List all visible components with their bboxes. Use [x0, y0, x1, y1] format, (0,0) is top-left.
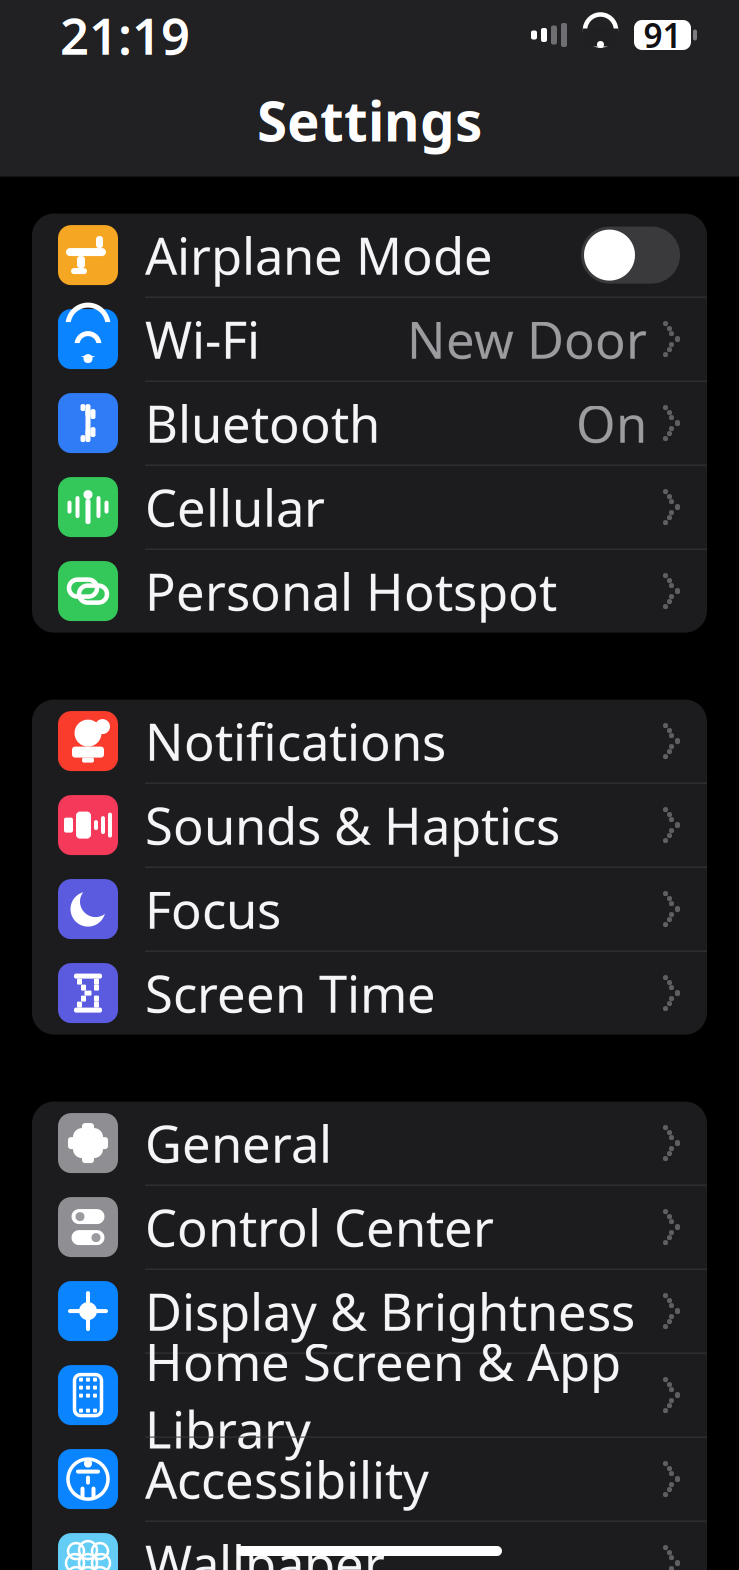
- staticText: Bluetooth: [145, 389, 380, 457]
- button[interactable]: Cellular: [32, 466, 707, 550]
- staticText: Wallpaper: [145, 1529, 385, 1570]
- button[interactable]: Notifications: [32, 700, 707, 784]
- staticText: Accessibility: [145, 1445, 429, 1513]
- button[interactable]: General: [32, 1102, 707, 1186]
- staticText: Personal Hotspot: [145, 557, 557, 625]
- button[interactable]: Personal Hotspot: [32, 550, 707, 633]
- button[interactable]: Sounds & Haptics: [32, 784, 707, 868]
- staticText: Settings: [257, 84, 482, 157]
- staticText: Control Center: [145, 1193, 494, 1261]
- button[interactable]: Bluetooth: [32, 382, 707, 466]
- staticText: Wi-Fi: [145, 305, 260, 373]
- staticText: On: [576, 389, 647, 457]
- button[interactable]: Control Center: [32, 1186, 707, 1270]
- staticText: Focus: [145, 875, 281, 943]
- button[interactable]: Wallpaper: [32, 1522, 707, 1570]
- staticText: Display & Brightness: [145, 1277, 635, 1345]
- button[interactable]: Airplane Mode: [32, 214, 707, 298]
- button[interactable]: Home Screen & App Library: [32, 1354, 707, 1438]
- staticText: Notifications: [145, 707, 446, 775]
- button[interactable]: Focus: [32, 868, 707, 952]
- staticText: Screen Time: [145, 959, 436, 1027]
- staticText: 21:19: [60, 1, 190, 69]
- staticText: General: [145, 1109, 332, 1177]
- button[interactable]: Display & Brightness: [32, 1270, 707, 1354]
- button[interactable]: Accessibility: [32, 1438, 707, 1522]
- staticText: New Door: [407, 305, 647, 373]
- staticText: Airplane Mode: [145, 221, 493, 289]
- staticText: Home Screen & App Library: [145, 1328, 621, 1462]
- staticText: Sounds & Haptics: [145, 791, 560, 859]
- staticText: 91: [643, 13, 681, 57]
- staticText: Cellular: [145, 473, 325, 541]
- button[interactable]: Screen Time: [32, 952, 707, 1035]
- button[interactable]: Wi-Fi: [32, 298, 707, 382]
